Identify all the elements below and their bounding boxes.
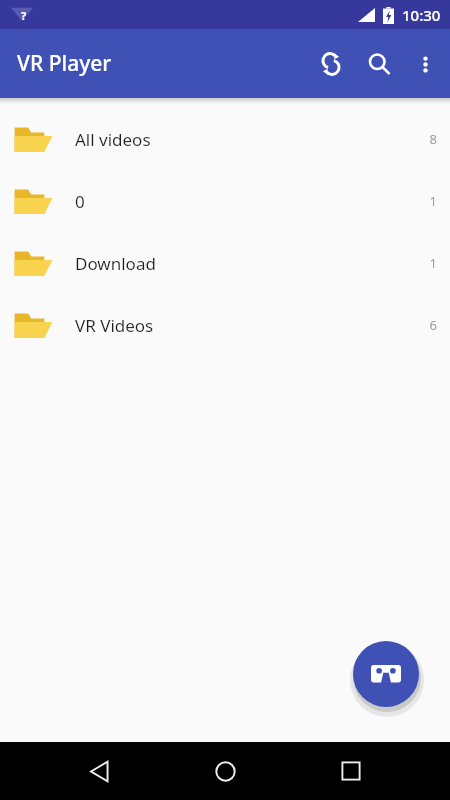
button[interactable]: Search (355, 40, 403, 88)
button[interactable]: Download (0, 232, 450, 294)
staticText: 1 (408, 254, 437, 272)
staticText: 0 (75, 190, 408, 213)
staticText: Download (75, 252, 408, 275)
staticText: VR Player (17, 49, 112, 78)
button[interactable]: Back (72, 744, 126, 798)
button[interactable]: 0 (0, 170, 450, 232)
staticText: 6 (408, 316, 437, 334)
button[interactable]: Open VR viewer (353, 641, 419, 707)
button[interactable]: Refresh (307, 40, 355, 88)
staticText: VR Videos (75, 314, 408, 337)
button[interactable]: Home (198, 744, 252, 798)
button[interactable]: VR Videos (0, 294, 450, 356)
button[interactable]: More options (403, 42, 447, 86)
button[interactable]: All videos (0, 108, 450, 170)
staticText: 10:30 (402, 5, 441, 25)
staticText: ? (21, 8, 27, 23)
staticText: 8 (408, 130, 437, 148)
staticText: 1 (408, 192, 437, 210)
button[interactable]: Recent apps (324, 744, 378, 798)
staticText: All videos (75, 128, 408, 151)
